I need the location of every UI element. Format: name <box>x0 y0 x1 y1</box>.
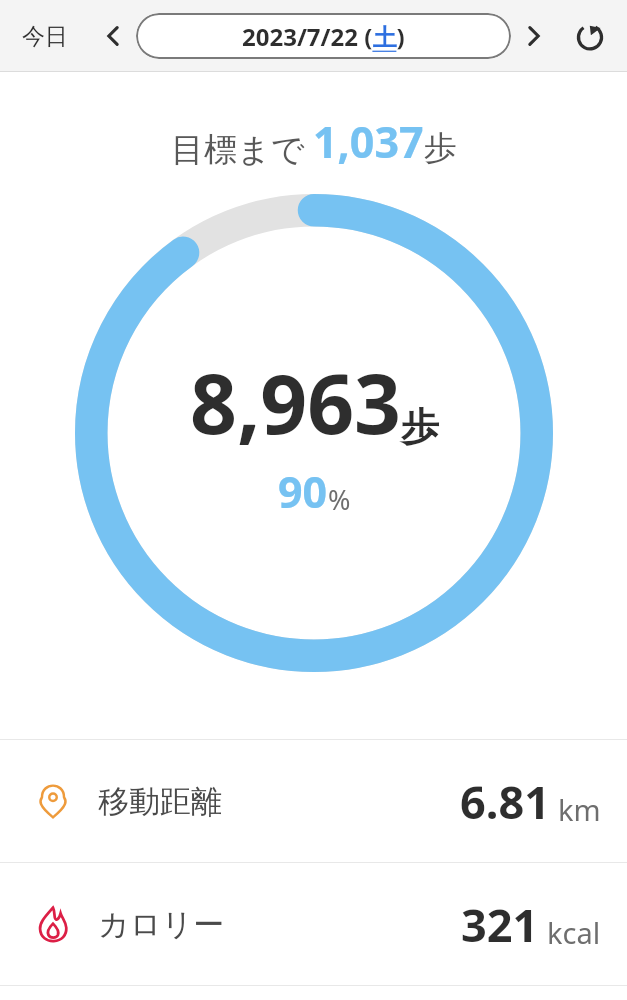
staticText: 1,037 <box>313 112 424 171</box>
button[interactable]: 今日 <box>14 14 76 59</box>
staticText: 2023/7/22 (土) <box>242 20 405 53</box>
staticText: 6.81 <box>460 771 550 832</box>
staticText: 歩 <box>424 127 457 169</box>
staticText: カロリー <box>98 905 225 944</box>
button[interactable]: 2023/7/22 (土) <box>136 13 511 59</box>
staticText: 321 <box>461 894 539 955</box>
staticText: 移動距離 <box>98 782 222 821</box>
button[interactable]: Refresh <box>567 13 613 59</box>
staticText: 90 <box>278 462 328 521</box>
button[interactable]: Previous day <box>92 15 134 57</box>
button[interactable]: カロリー <box>0 863 627 985</box>
staticText: kcal <box>547 913 601 952</box>
staticText: 今日 <box>22 22 68 51</box>
button[interactable]: 移動距離 <box>0 740 627 862</box>
staticText: % <box>328 481 351 518</box>
button[interactable]: Next day <box>513 15 555 57</box>
staticText: km <box>558 790 601 829</box>
staticText: 歩 <box>401 403 439 451</box>
staticText: 8,963 <box>190 346 401 458</box>
staticText: 目標まで <box>171 129 305 171</box>
